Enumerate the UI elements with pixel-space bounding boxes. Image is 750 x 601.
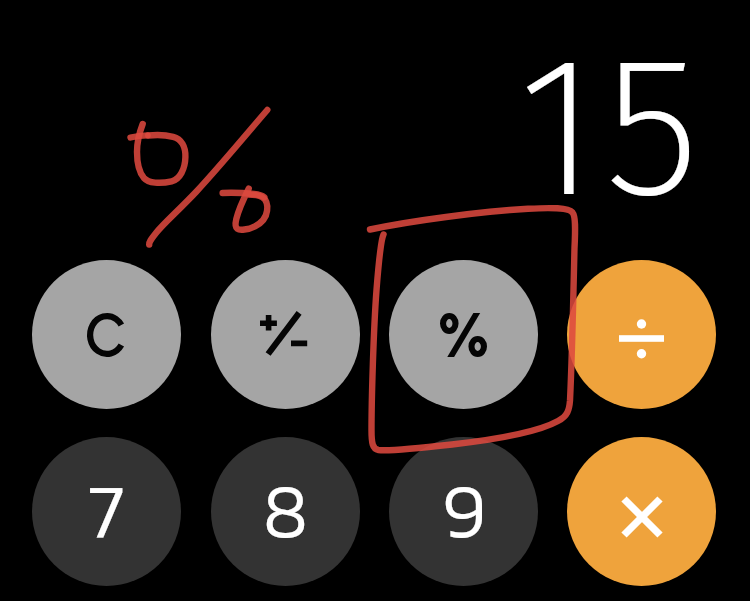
button[interactable]: Percent bbox=[389, 260, 538, 409]
staticText: 15 bbox=[518, 10, 706, 246]
button[interactable]: Seven bbox=[32, 437, 181, 586]
button[interactable]: Divide bbox=[567, 260, 716, 409]
button[interactable]: Multiply bbox=[567, 437, 716, 586]
button[interactable]: Eight bbox=[211, 437, 360, 586]
staticText: 7 bbox=[87, 452, 126, 567]
staticText: 8 bbox=[263, 452, 308, 567]
button[interactable]: Clear bbox=[32, 260, 181, 409]
button[interactable]: Nine bbox=[389, 437, 538, 586]
staticText: 9 bbox=[442, 452, 486, 567]
button[interactable]: Plus minus bbox=[211, 260, 360, 409]
